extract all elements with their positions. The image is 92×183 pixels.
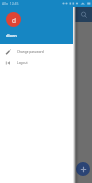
staticText: Allo 12:45	[2, 1, 19, 6]
staticText: dixen	[6, 33, 17, 38]
button[interactable]: Add	[76, 162, 90, 176]
button[interactable]: Change password	[0, 46, 74, 57]
button[interactable]: Logout	[0, 57, 74, 68]
staticText: Logout	[17, 61, 28, 65]
staticText: d	[12, 16, 16, 25]
staticText: Change password	[17, 50, 44, 54]
button[interactable]: Search	[78, 9, 90, 21]
